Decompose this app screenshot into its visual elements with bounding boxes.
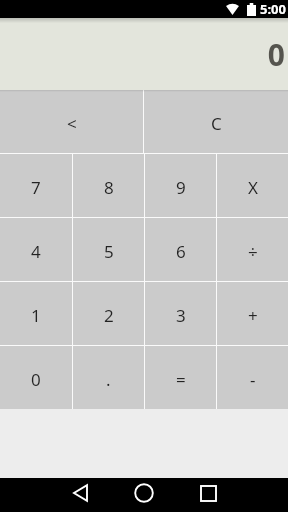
- staticText: 0: [267, 34, 285, 75]
- button[interactable]: 5: [73, 218, 144, 281]
- button[interactable]: 9: [145, 154, 216, 217]
- staticText: +: [248, 304, 258, 327]
- button[interactable]: 2: [73, 282, 144, 345]
- button[interactable]: =: [145, 346, 216, 409]
- button[interactable]: [134, 483, 154, 503]
- staticText: 7: [31, 176, 41, 199]
- staticText: 8: [104, 176, 114, 199]
- staticText: C: [211, 112, 222, 135]
- staticText: <: [67, 112, 77, 135]
- button[interactable]: 3: [145, 282, 216, 345]
- staticText: 5:00: [260, 0, 286, 18]
- staticText: .: [106, 368, 111, 391]
- staticText: 5: [104, 240, 114, 263]
- staticText: 3: [176, 304, 186, 327]
- button[interactable]: .: [73, 346, 144, 409]
- staticText: 4: [31, 240, 41, 263]
- staticText: X: [248, 176, 258, 199]
- button[interactable]: -: [217, 346, 288, 409]
- button[interactable]: C: [144, 90, 288, 153]
- staticText: 9: [176, 176, 186, 199]
- staticText: 6: [176, 240, 186, 263]
- staticText: ÷: [248, 240, 258, 263]
- button[interactable]: <: [0, 90, 143, 153]
- staticText: =: [176, 368, 186, 391]
- button[interactable]: [70, 483, 90, 503]
- button[interactable]: ÷: [217, 218, 288, 281]
- button[interactable]: X: [217, 154, 288, 217]
- button[interactable]: 6: [145, 218, 216, 281]
- staticText: -: [250, 368, 256, 391]
- button[interactable]: 8: [73, 154, 144, 217]
- button[interactable]: 4: [0, 218, 72, 281]
- staticText: 0: [31, 368, 41, 391]
- button[interactable]: 7: [0, 154, 72, 217]
- button[interactable]: +: [217, 282, 288, 345]
- staticText: 2: [104, 304, 114, 327]
- staticText: 1: [31, 304, 41, 327]
- button[interactable]: 1: [0, 282, 72, 345]
- button[interactable]: 0: [0, 346, 72, 409]
- button[interactable]: [198, 483, 218, 503]
